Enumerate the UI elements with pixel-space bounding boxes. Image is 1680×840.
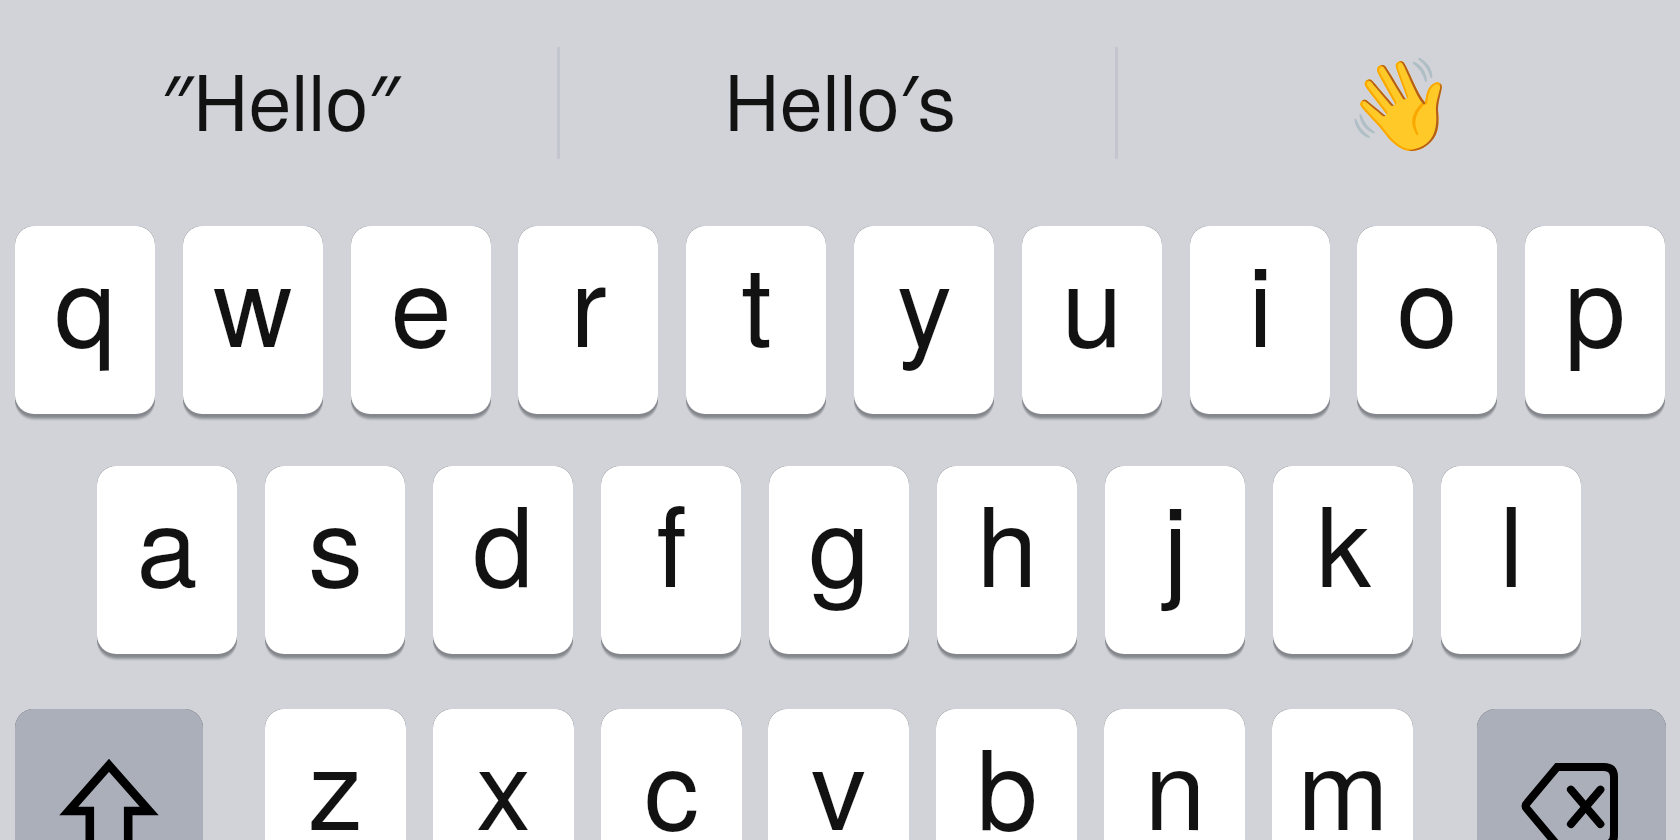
button[interactable]: r [518, 226, 658, 414]
staticText: i [1248, 226, 1273, 379]
staticText: o [1396, 226, 1458, 379]
staticText: a [136, 466, 198, 619]
staticText: x [476, 709, 531, 840]
staticText: 👋 [1344, 53, 1457, 158]
button[interactable]: p [1525, 226, 1665, 414]
button[interactable]: b [936, 709, 1077, 840]
button[interactable]: z [265, 709, 406, 840]
staticText: y [897, 226, 952, 379]
button[interactable]: Hello′s [560, 0, 1120, 208]
button[interactable]: n [1104, 709, 1245, 840]
staticText: q [54, 226, 116, 379]
staticText: m [1297, 709, 1389, 840]
button[interactable]: t [686, 226, 826, 414]
button[interactable]: a [97, 466, 237, 654]
staticText: u [1061, 226, 1123, 379]
button[interactable]: k [1273, 466, 1413, 654]
staticText: v [811, 709, 866, 840]
button[interactable]: c [601, 709, 742, 840]
staticText: k [1316, 466, 1371, 619]
button[interactable]: m [1272, 709, 1413, 840]
staticText: Hello′s [724, 43, 956, 154]
button[interactable]: w [183, 226, 323, 414]
other: Shift [15, 709, 203, 840]
staticText: j [1163, 466, 1188, 619]
button[interactable]: Shift [15, 709, 203, 840]
staticText: f [656, 466, 687, 619]
staticText: p [1564, 226, 1626, 379]
staticText: c [644, 709, 699, 840]
other: Backspace [1520, 763, 1618, 840]
staticText: t [741, 226, 772, 379]
button[interactable]: f [601, 466, 741, 654]
staticText: ″Hello″ [161, 43, 400, 154]
button[interactable]: ″Hello″ [0, 0, 560, 208]
staticText: e [390, 226, 452, 379]
button[interactable]: d [433, 466, 573, 654]
button[interactable]: x [433, 709, 574, 840]
staticText: g [808, 466, 870, 619]
staticText: w [213, 226, 293, 379]
button[interactable]: y [854, 226, 994, 414]
button[interactable]: v [768, 709, 909, 840]
staticText: l [1499, 466, 1524, 619]
button[interactable]: Waving hand emoji suggestion [1120, 0, 1680, 208]
button[interactable]: u [1022, 226, 1162, 414]
staticText: b [976, 709, 1038, 840]
button[interactable]: o [1357, 226, 1497, 414]
staticText: h [976, 466, 1038, 619]
button[interactable]: j [1105, 466, 1245, 654]
button[interactable]: q [15, 226, 155, 414]
button[interactable]: g [769, 466, 909, 654]
button[interactable]: s [265, 466, 405, 654]
staticText: z [308, 709, 363, 840]
staticText: s [308, 466, 363, 619]
staticText: d [472, 466, 534, 619]
button[interactable]: i [1190, 226, 1330, 414]
staticText: n [1144, 709, 1206, 840]
button[interactable]: h [937, 466, 1077, 654]
button[interactable]: Backspace [1477, 709, 1666, 840]
staticText: r [570, 226, 607, 379]
button[interactable]: e [351, 226, 491, 414]
button[interactable]: l [1441, 466, 1581, 654]
